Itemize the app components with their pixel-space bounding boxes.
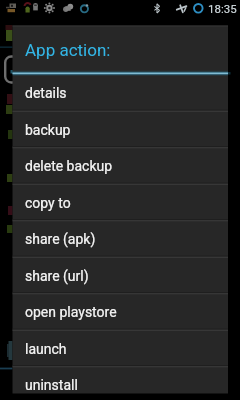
staticText: open playstore — [25, 304, 117, 320]
button[interactable]: delete backup — [13, 147, 229, 184]
staticText: launch — [25, 341, 67, 357]
staticText: share (apk) — [25, 231, 96, 247]
staticText: details — [25, 85, 67, 101]
staticText: copy to — [25, 195, 71, 211]
button[interactable]: open playstore — [13, 293, 229, 330]
staticText: share (url) — [25, 268, 89, 284]
button[interactable]: backup — [13, 111, 229, 148]
button[interactable]: copy to — [13, 184, 229, 221]
staticText: backup — [25, 122, 71, 138]
staticText: App action: — [25, 40, 111, 60]
button[interactable]: details — [13, 74, 229, 111]
button[interactable]: share (apk) — [13, 220, 229, 257]
staticText: uninstall — [25, 377, 78, 393]
button[interactable]: launch — [13, 330, 229, 367]
staticText: 18:35 — [208, 2, 237, 15]
button[interactable]: share (url) — [13, 257, 229, 294]
staticText: delete backup — [25, 158, 113, 174]
button[interactable]: uninstall — [13, 366, 229, 400]
